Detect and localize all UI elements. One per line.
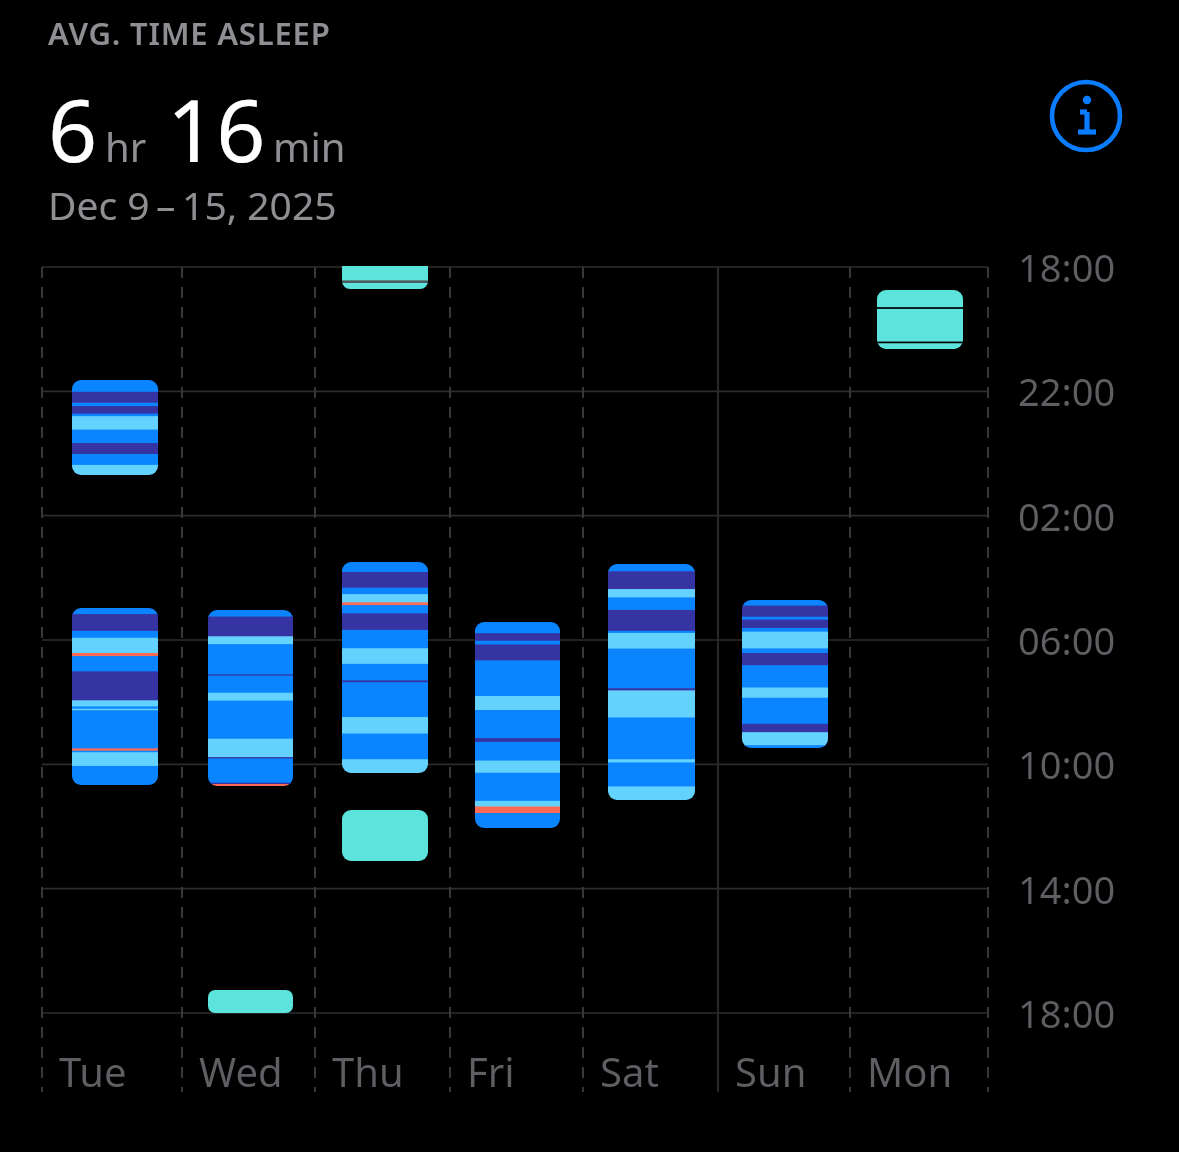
- button[interactable]: Info about average time asleep: [1048, 78, 1124, 154]
